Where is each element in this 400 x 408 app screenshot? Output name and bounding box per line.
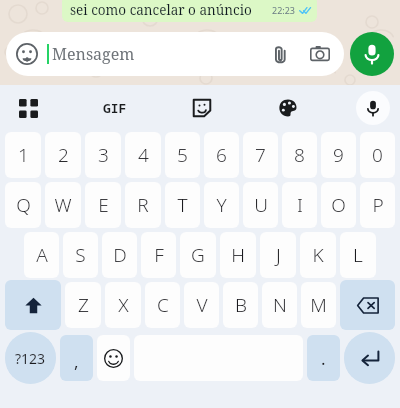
staticText: ?123 — [15, 349, 46, 368]
staticText: W — [54, 192, 72, 218]
staticText: D — [113, 242, 127, 268]
staticText: 3 — [98, 142, 109, 168]
button[interactable]: Q — [5, 182, 41, 228]
staticText: N — [273, 292, 287, 318]
button[interactable]: Backspace — [340, 280, 395, 330]
staticText: . — [321, 347, 326, 370]
button[interactable]: Z — [65, 282, 101, 328]
staticText: I — [297, 192, 303, 218]
button[interactable]: C — [145, 282, 180, 328]
button[interactable]: 0 — [360, 132, 395, 178]
button[interactable]: sei como cancelar o anúncio — [62, 0, 317, 22]
staticText: Y — [216, 192, 227, 218]
button[interactable]: O — [321, 182, 356, 228]
staticText: U — [254, 192, 268, 218]
button[interactable]: I — [282, 182, 317, 228]
other: Emoji — [16, 43, 38, 65]
button[interactable]: Attach — [266, 40, 294, 68]
button[interactable]: 3 — [85, 132, 121, 178]
staticText: L — [353, 242, 363, 268]
button[interactable]: D — [102, 232, 137, 278]
staticText: H — [231, 242, 245, 268]
button[interactable]: Stickers — [184, 90, 220, 126]
button[interactable]: V — [184, 282, 219, 328]
button[interactable]: L — [340, 232, 376, 278]
staticText: 5 — [177, 142, 188, 168]
button[interactable]: Emoji — [97, 335, 130, 381]
staticText: 9 — [333, 142, 344, 168]
button[interactable]: Apps — [10, 90, 46, 126]
staticText: J — [276, 242, 281, 268]
staticText: 0 — [372, 142, 383, 168]
staticText: X — [118, 292, 129, 318]
button[interactable]: Enter — [344, 332, 395, 384]
button[interactable]: 9 — [321, 132, 356, 178]
staticText: Q — [16, 192, 31, 218]
button[interactable]: Shift — [5, 280, 61, 330]
button[interactable]: T — [165, 182, 200, 228]
button[interactable]: F — [141, 232, 176, 278]
button[interactable]: P — [360, 182, 395, 228]
button[interactable]: ?123 — [5, 332, 56, 384]
button[interactable]: . — [307, 335, 340, 381]
staticText: T — [177, 192, 188, 218]
staticText: GIF — [103, 99, 127, 117]
staticText: S — [75, 242, 86, 268]
button[interactable]: Emoji — [6, 32, 344, 76]
staticText: 8 — [294, 142, 305, 168]
button[interactable]: B — [223, 282, 258, 328]
staticText: F — [154, 242, 164, 268]
staticText: 7 — [255, 142, 266, 168]
staticText: 6 — [216, 142, 227, 168]
button[interactable]: 7 — [243, 132, 278, 178]
staticText: R — [137, 192, 149, 218]
button[interactable]: H — [220, 232, 256, 278]
staticText: 1 — [18, 142, 29, 168]
button[interactable]: J — [260, 232, 296, 278]
button[interactable]: Camera — [306, 40, 334, 68]
button[interactable]: U — [243, 182, 278, 228]
staticText: M — [310, 292, 327, 318]
staticText: K — [312, 242, 324, 268]
staticText: V — [196, 292, 208, 318]
button[interactable]: K — [300, 232, 336, 278]
button[interactable]: G — [180, 232, 216, 278]
staticText: G — [191, 242, 205, 268]
staticText: Z — [78, 292, 89, 318]
staticText: C — [157, 292, 169, 318]
staticText: P — [372, 192, 384, 218]
button[interactable]: M — [301, 282, 336, 328]
staticText: 4 — [138, 142, 149, 168]
button[interactable]: W — [45, 182, 81, 228]
staticText: 2 — [58, 142, 69, 168]
button[interactable]: Voice input — [356, 91, 390, 125]
staticText: 22:23 — [272, 4, 296, 16]
button[interactable]: 6 — [204, 132, 239, 178]
button[interactable]: S — [63, 232, 98, 278]
staticText: B — [235, 292, 247, 318]
staticText: sei como cancelar o anúncio — [70, 1, 252, 19]
button[interactable]: 4 — [125, 132, 161, 178]
button[interactable]: R — [125, 182, 161, 228]
button[interactable]: 5 — [165, 132, 200, 178]
staticText: , — [74, 350, 79, 373]
button[interactable]: GIF — [95, 93, 135, 123]
button[interactable]: , — [60, 335, 93, 381]
staticText: A — [36, 242, 48, 268]
button[interactable]: A — [24, 232, 59, 278]
staticText: E — [98, 192, 109, 218]
button[interactable]: E — [85, 182, 121, 228]
button[interactable]: Voice message — [350, 32, 394, 76]
button[interactable]: 8 — [282, 132, 317, 178]
button[interactable]: Y — [204, 182, 239, 228]
button[interactable]: Themes — [270, 90, 306, 126]
button[interactable]: 1 — [5, 132, 41, 178]
staticText: Mensagem — [52, 43, 135, 65]
staticText: O — [331, 192, 346, 218]
button[interactable]: 2 — [45, 132, 81, 178]
button[interactable]: X — [105, 282, 141, 328]
button[interactable]: N — [262, 282, 297, 328]
